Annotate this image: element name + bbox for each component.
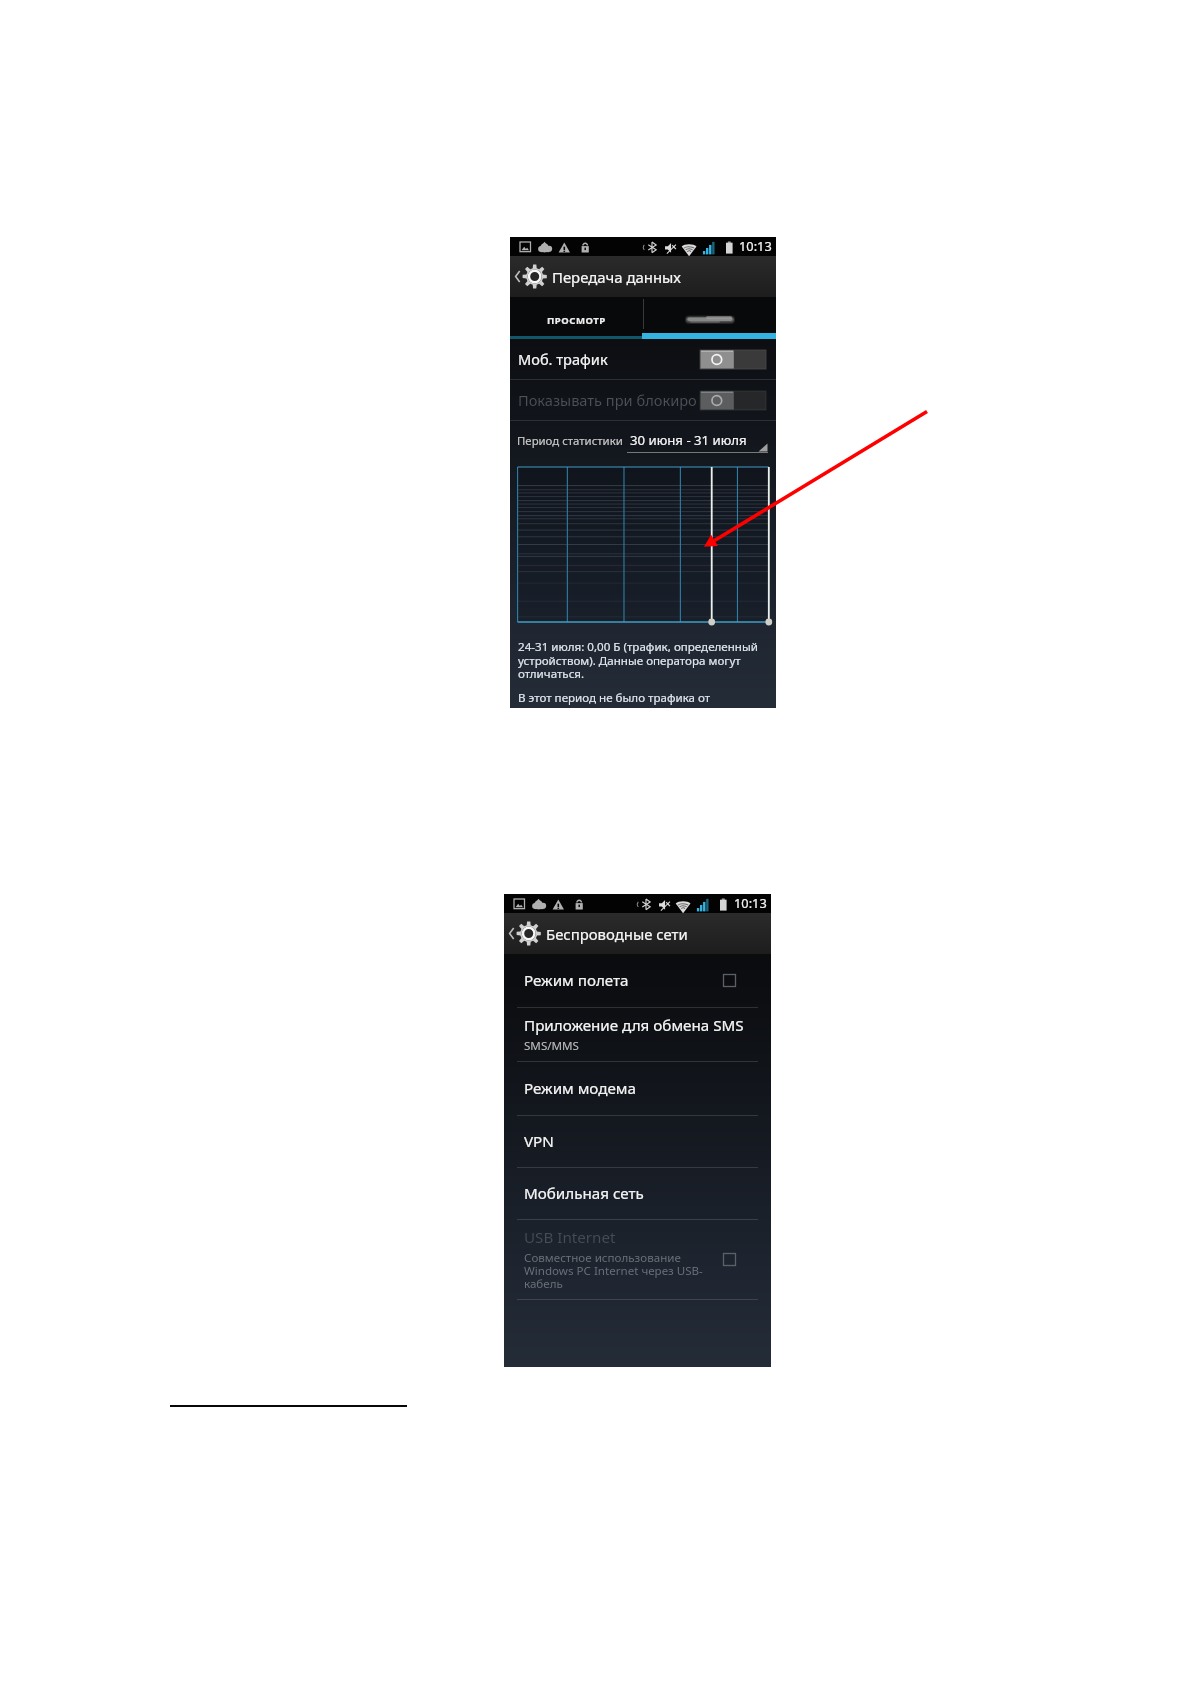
staticText: Приложение для обмена SMS — [524, 1015, 744, 1036]
button[interactable]: Приложение для обмена SMS — [504, 1008, 771, 1061]
button[interactable]: USB Internet — [504, 1220, 771, 1299]
staticText: ПРОСМОТР — [547, 314, 606, 327]
staticText: VPN — [524, 1131, 554, 1152]
staticText: Совместное использование Windows PC Inte… — [524, 1250, 715, 1292]
button[interactable]: Back to settings — [504, 913, 771, 954]
staticText: Режим полета — [524, 970, 629, 991]
button[interactable]: Режим полета — [504, 954, 771, 1007]
staticText: USB Internet — [524, 1227, 616, 1248]
staticText: Передача данных — [552, 267, 681, 287]
button[interactable]: Back to settings — [510, 256, 776, 297]
button[interactable]: Мобильная сеть — [504, 1168, 771, 1219]
button[interactable]: Показывать при блокиро — [510, 380, 776, 420]
staticText: 10:13 — [739, 237, 772, 254]
staticText: Период статистики — [517, 433, 623, 449]
staticText: 10:13 — [734, 894, 767, 911]
staticText: SMS/MMS — [524, 1038, 763, 1054]
staticText: Мобильная сеть — [524, 1183, 644, 1204]
staticText: Режим модема — [524, 1078, 636, 1099]
staticText: Моб. трафик — [518, 349, 608, 369]
staticText: В этот период не было трафика от приложе… — [518, 690, 767, 708]
button[interactable]: Second tab — [642, 297, 776, 339]
button[interactable]: Моб. трафик — [510, 339, 776, 379]
button[interactable]: VPN — [504, 1116, 771, 1167]
staticText: Показывать при блокиро — [518, 390, 697, 410]
button[interactable]: Toggle Моб. трафик — [700, 350, 766, 369]
staticText: 30 июня - 31 июля — [630, 431, 747, 449]
staticText: Беспроводные сети — [546, 924, 688, 944]
button[interactable]: ПРОСМОТР — [510, 297, 642, 339]
button[interactable]: Режим модема — [504, 1062, 771, 1115]
button[interactable]: Период статистики — [510, 421, 776, 467]
button[interactable]: Toggle Показывать при блокиро — [700, 391, 766, 410]
staticText: 24-31 июля: 0,00 Б (трафик, определенный… — [518, 639, 767, 681]
